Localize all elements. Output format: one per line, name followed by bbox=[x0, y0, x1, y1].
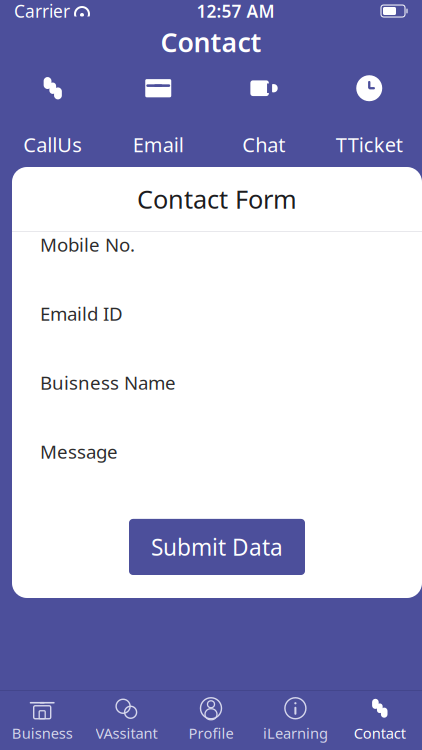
staticText: Mobile No. bbox=[40, 232, 135, 257]
button[interactable]: Buisness bbox=[0, 690, 84, 750]
staticText: Contact bbox=[160, 24, 261, 60]
button[interactable]: iLearning bbox=[253, 690, 338, 750]
staticText: iLearning bbox=[263, 723, 328, 743]
button[interactable]: Email bbox=[105, 67, 211, 162]
staticText: Buisness bbox=[12, 723, 73, 743]
staticText: VAssitant bbox=[96, 723, 158, 743]
staticText: Profile bbox=[188, 723, 233, 743]
staticText: 12:57 AM bbox=[196, 0, 274, 22]
staticText: TTicket bbox=[336, 131, 403, 158]
staticText: Submit Data bbox=[151, 532, 283, 562]
staticText: Emaild ID bbox=[40, 301, 123, 326]
button[interactable]: Submit Data bbox=[129, 519, 305, 575]
staticText: Carrier bbox=[14, 0, 70, 22]
staticText: Buisness Name bbox=[40, 370, 176, 395]
button[interactable]: TTicket bbox=[316, 67, 422, 162]
button[interactable]: Chat bbox=[211, 67, 316, 162]
staticText: Contact bbox=[354, 723, 406, 743]
staticText: Email bbox=[133, 131, 184, 158]
button[interactable]: Profile bbox=[169, 690, 253, 750]
button[interactable]: VAssitant bbox=[84, 690, 169, 750]
staticText: Contact Form bbox=[137, 182, 297, 216]
staticText: Chat bbox=[242, 131, 285, 158]
staticText: Message bbox=[40, 439, 118, 464]
staticText: CallUs bbox=[23, 131, 82, 158]
button[interactable]: Contact bbox=[338, 690, 422, 750]
button[interactable]: CallUs bbox=[0, 67, 105, 162]
